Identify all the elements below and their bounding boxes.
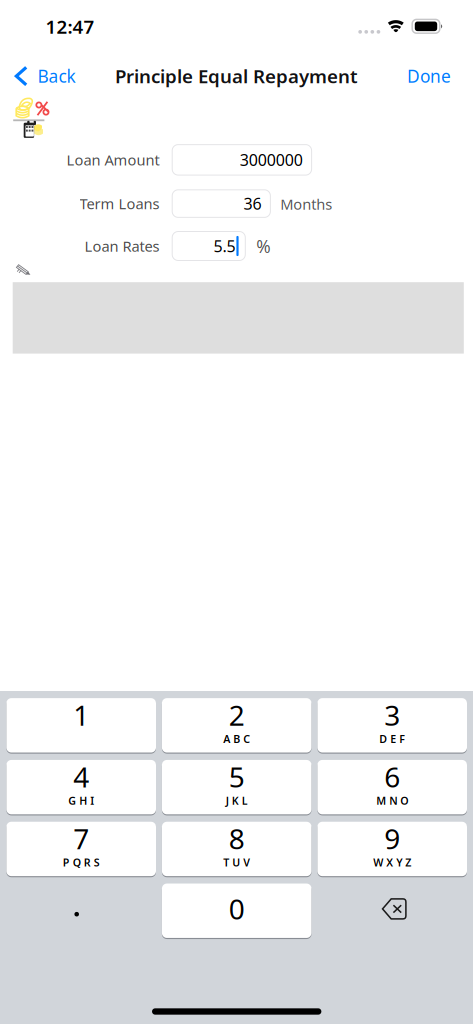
button[interactable]: 3000000 — [172, 145, 312, 175]
button[interactable]: 2 — [162, 698, 311, 753]
staticText: 5 — [229, 758, 245, 795]
staticText: G H I — [68, 794, 94, 808]
staticText: Term Loans — [79, 194, 159, 213]
staticText: Done — [407, 64, 451, 87]
button[interactable]: 4 — [6, 759, 156, 815]
staticText: Loan Rates — [84, 236, 159, 256]
staticText: 1 — [73, 696, 89, 733]
staticText: 0 — [229, 890, 245, 927]
button[interactable]: 7 — [6, 821, 156, 877]
staticText: T U V — [223, 855, 250, 870]
staticText: 12:47 — [45, 14, 94, 39]
button[interactable]: 36 — [172, 190, 270, 217]
staticText: % — [256, 235, 270, 258]
staticText: 3000000 — [240, 149, 303, 170]
button[interactable]: 5.5 — [172, 231, 245, 260]
staticText: D E F — [379, 732, 405, 746]
button[interactable]: 9 — [317, 821, 467, 877]
staticText: 3 — [384, 696, 400, 733]
staticText: W X Y Z — [373, 855, 411, 870]
staticText: Back — [37, 64, 75, 87]
staticText: Principle Equal Repayment — [115, 64, 358, 88]
button[interactable]: 0 — [162, 883, 311, 938]
staticText: 5.5 — [213, 235, 235, 257]
button[interactable]: Done — [396, 55, 462, 97]
button[interactable]: Decimal point — [6, 883, 156, 937]
staticText: 6 — [384, 758, 400, 795]
staticText: P Q R S — [63, 855, 100, 870]
staticText: Loan Amount — [66, 150, 159, 170]
button[interactable]: 1 — [6, 698, 156, 753]
button[interactable]: 8 — [162, 821, 311, 877]
button[interactable]: 6 — [317, 759, 467, 815]
staticText: 4 — [73, 758, 89, 795]
button[interactable]: 3 — [317, 698, 467, 753]
staticText: Months — [280, 194, 332, 214]
button[interactable]: 5 — [162, 759, 311, 815]
staticText: J K L — [226, 794, 248, 808]
button[interactable]: Back — [0, 55, 88, 97]
staticText: 2 — [229, 696, 245, 733]
staticText: 9 — [384, 820, 400, 857]
staticText: 7 — [73, 820, 89, 857]
staticText: 36 — [244, 193, 262, 214]
staticText: 8 — [229, 820, 245, 857]
staticText: M N O — [376, 794, 408, 808]
staticText: A B C — [223, 732, 250, 746]
button[interactable]: Delete — [317, 883, 467, 937]
